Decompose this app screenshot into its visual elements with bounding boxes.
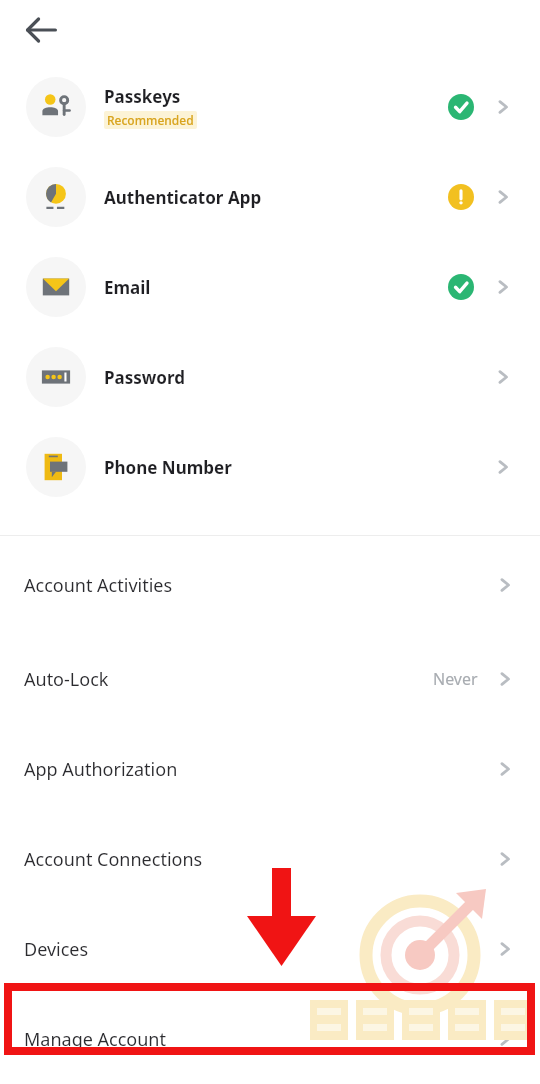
staticText: App Authorization: [24, 757, 178, 782]
button[interactable]: Email: [0, 242, 540, 332]
staticText: Account Activities: [24, 573, 173, 598]
button[interactable]: Password: [0, 332, 540, 422]
staticText: Never: [433, 668, 478, 690]
staticText: Authenticator App: [104, 186, 262, 209]
staticText: Email: [104, 276, 151, 299]
staticText: Account Connections: [24, 847, 203, 872]
staticText: Passkeys: [104, 85, 181, 108]
button[interactable]: Authenticator App: [0, 152, 540, 242]
button[interactable]: Auto-Lock: [0, 634, 540, 724]
button[interactable]: Passkeys: [0, 62, 540, 152]
button[interactable]: Manage Account: [0, 994, 540, 1084]
staticText: Phone Number: [104, 456, 232, 479]
staticText: Devices: [24, 937, 89, 962]
staticText: Manage Account: [24, 1027, 166, 1052]
staticText: Auto-Lock: [24, 667, 109, 692]
button[interactable]: Phone Number: [0, 422, 540, 512]
button[interactable]: Devices: [0, 904, 540, 994]
button[interactable]: Back: [17, 6, 65, 54]
staticText: Recommended: [107, 112, 194, 128]
button[interactable]: App Authorization: [0, 724, 540, 814]
button[interactable]: Account Activities: [0, 536, 540, 634]
staticText: Password: [104, 366, 185, 389]
button[interactable]: Account Connections: [0, 814, 540, 904]
